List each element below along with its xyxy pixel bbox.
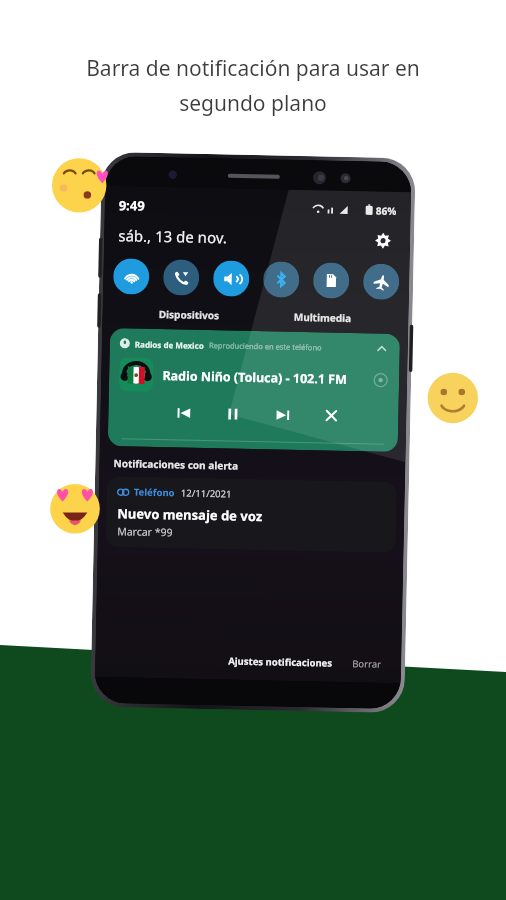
staticText: Notificaciones con alerta bbox=[113, 456, 238, 473]
button[interactable]: Bluetooth bbox=[263, 261, 299, 298]
staticText: sáb., 13 de nov. bbox=[118, 225, 227, 247]
button[interactable]: Ajustes notificaciones bbox=[224, 650, 336, 674]
staticText: Marcar *99 bbox=[117, 524, 173, 539]
button[interactable]: Modo avión bbox=[363, 263, 399, 300]
button[interactable]: Ajustes bbox=[370, 227, 396, 254]
staticText: Barra de notificación para usar en bbox=[86, 54, 420, 83]
button[interactable]: Siguiente bbox=[269, 401, 296, 428]
staticText: Dispositivos bbox=[158, 307, 220, 322]
staticText: 9:49 bbox=[118, 196, 145, 215]
button[interactable]: Pausa bbox=[219, 400, 246, 427]
button[interactable]: Llamadas Wi-Fi bbox=[163, 259, 200, 296]
button[interactable]: Sonido bbox=[213, 260, 249, 297]
staticText: Ajustes notificaciones bbox=[228, 654, 332, 670]
button[interactable]: Salida de audio bbox=[371, 370, 389, 389]
staticText: Teléfono bbox=[134, 485, 175, 499]
staticText: Borrar bbox=[352, 657, 381, 671]
staticText: Multimedia bbox=[293, 310, 352, 325]
button[interactable]: Tarjeta SD bbox=[313, 262, 349, 299]
button[interactable]: Dispositivos bbox=[122, 306, 256, 323]
staticText: segundo plano bbox=[179, 89, 327, 118]
button[interactable]: Contraer bbox=[374, 340, 390, 357]
button[interactable]: Wi-Fi bbox=[113, 258, 150, 295]
button[interactable]: Anterior bbox=[170, 399, 197, 426]
button[interactable]: Radios de Mexico bbox=[108, 328, 400, 452]
staticText: Radios de Mexico bbox=[135, 338, 204, 351]
button[interactable]: Teléfono bbox=[106, 476, 397, 553]
staticText: Radio Niño (Toluca) - 102.1 FM bbox=[162, 367, 347, 388]
button[interactable]: Cerrar bbox=[318, 402, 345, 429]
staticText: Nuevo mensaje de voz bbox=[117, 504, 262, 525]
staticText: 86% bbox=[375, 203, 397, 218]
staticText: Reproduciendo en este teléfono bbox=[209, 340, 322, 352]
button[interactable]: Multimedia bbox=[255, 309, 389, 326]
staticText: 12/11/2021 bbox=[181, 486, 232, 501]
button[interactable]: Borrar bbox=[348, 653, 385, 675]
